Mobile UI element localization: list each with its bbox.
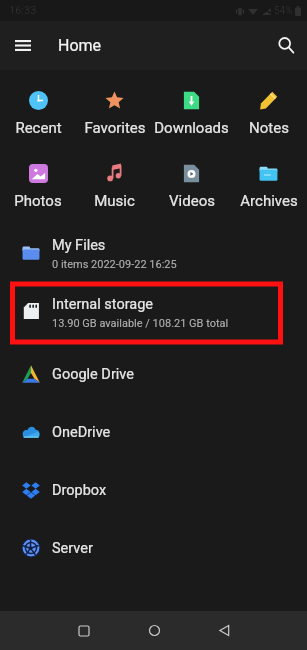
button[interactable]: Videos — [153, 143, 230, 216]
button[interactable]: Recent — [0, 70, 76, 143]
button[interactable]: Favorites — [76, 70, 153, 143]
staticText: 0 items 2022-09-22 16:25 — [52, 258, 177, 271]
staticText: OneDrive — [52, 424, 111, 441]
button[interactable]: Recent apps — [53, 611, 115, 650]
staticText: Internal storage — [52, 296, 154, 313]
staticText: 13.90 GB available / 108.21 GB total — [52, 317, 229, 330]
button[interactable]: Back — [193, 611, 255, 650]
button[interactable]: Internal storage — [0, 282, 307, 340]
staticText: 16:33 — [9, 4, 37, 17]
button[interactable]: Photos — [0, 143, 76, 216]
button[interactable]: Dropbox — [0, 461, 307, 519]
button[interactable]: Downloads — [153, 70, 230, 143]
button[interactable]: Search — [265, 21, 307, 70]
staticText: Archives — [240, 192, 298, 210]
staticText: 54% — [274, 5, 293, 17]
button[interactable]: My Files — [0, 223, 307, 282]
button[interactable]: Google Drive — [0, 345, 307, 403]
staticText: Photos — [14, 192, 62, 210]
staticText: Videos — [169, 192, 215, 210]
staticText: My Files — [52, 237, 106, 254]
button[interactable]: Archives — [230, 143, 307, 216]
staticText: Music — [94, 192, 135, 210]
staticText: Notes — [249, 119, 289, 137]
staticText: Dropbox — [52, 482, 107, 499]
staticText: Google Drive — [52, 366, 134, 383]
button[interactable]: Notes — [230, 70, 307, 143]
staticText: Favorites — [84, 119, 146, 137]
button[interactable]: Music — [76, 143, 153, 216]
staticText: Home — [58, 36, 102, 55]
button[interactable]: Server — [0, 519, 307, 577]
button[interactable]: Navigation menu — [0, 21, 45, 70]
staticText: Downloads — [154, 119, 229, 137]
staticText: Server — [52, 540, 93, 557]
button[interactable]: Home — [123, 611, 185, 650]
staticText: Recent — [15, 119, 62, 137]
button[interactable]: OneDrive — [0, 403, 307, 461]
